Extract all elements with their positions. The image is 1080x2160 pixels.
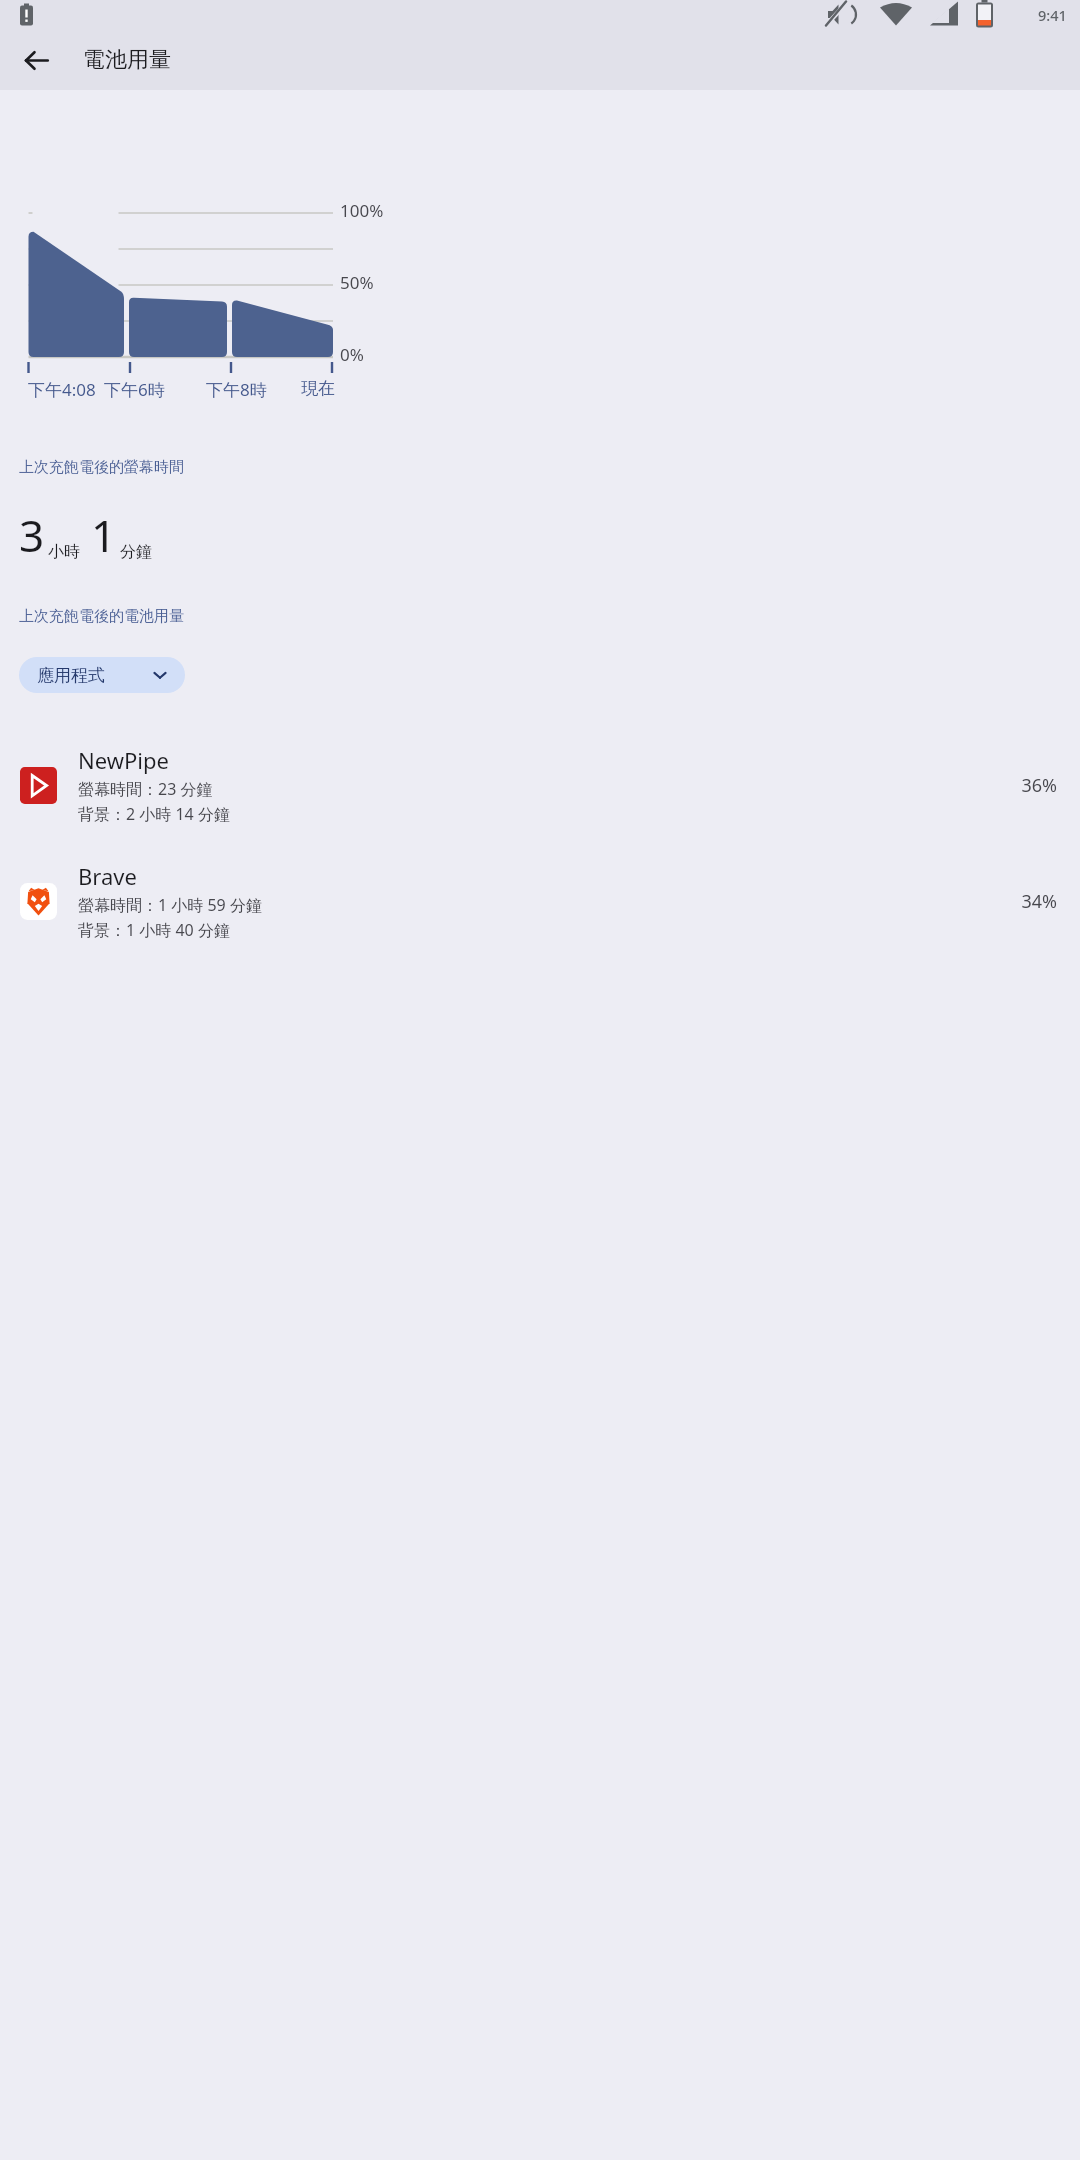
staticText: 現在 <box>301 378 335 399</box>
staticText: 應用程式 <box>37 665 105 686</box>
staticText: 下午8時 <box>206 378 267 401</box>
staticText: 100% <box>340 199 384 222</box>
staticText: 3 <box>19 505 45 565</box>
staticText: 背景：2 小時 14 分鐘 <box>78 803 230 825</box>
staticText: NewPipe <box>78 745 169 775</box>
button[interactable]: NewPipe <box>0 745 1080 825</box>
staticText: 小時 <box>48 542 80 562</box>
staticText: 1 <box>91 505 117 565</box>
staticText: 50% <box>340 271 374 294</box>
button[interactable]: Back <box>12 36 60 84</box>
staticText: 36% <box>1021 773 1057 798</box>
staticText: 背景：1 小時 40 分鐘 <box>78 919 230 941</box>
staticText: 下午6時 <box>104 378 165 401</box>
staticText: 上次充飽電後的螢幕時間 <box>19 458 184 477</box>
staticText: 下午4:08 <box>28 378 96 401</box>
staticText: 34% <box>1021 889 1057 914</box>
staticText: 0% <box>340 343 364 366</box>
staticText: 螢幕時間：1 小時 59 分鐘 <box>78 894 262 916</box>
button[interactable]: Brave <box>0 861 1080 941</box>
staticText: 螢幕時間：23 分鐘 <box>78 778 213 800</box>
staticText: 上次充飽電後的電池用量 <box>19 607 184 626</box>
staticText: 9:41 <box>1038 5 1067 25</box>
button[interactable]: 應用程式 <box>19 657 185 693</box>
staticText: 電池用量 <box>83 46 171 74</box>
staticText: 分鐘 <box>120 542 152 562</box>
staticText: Brave <box>78 861 137 891</box>
